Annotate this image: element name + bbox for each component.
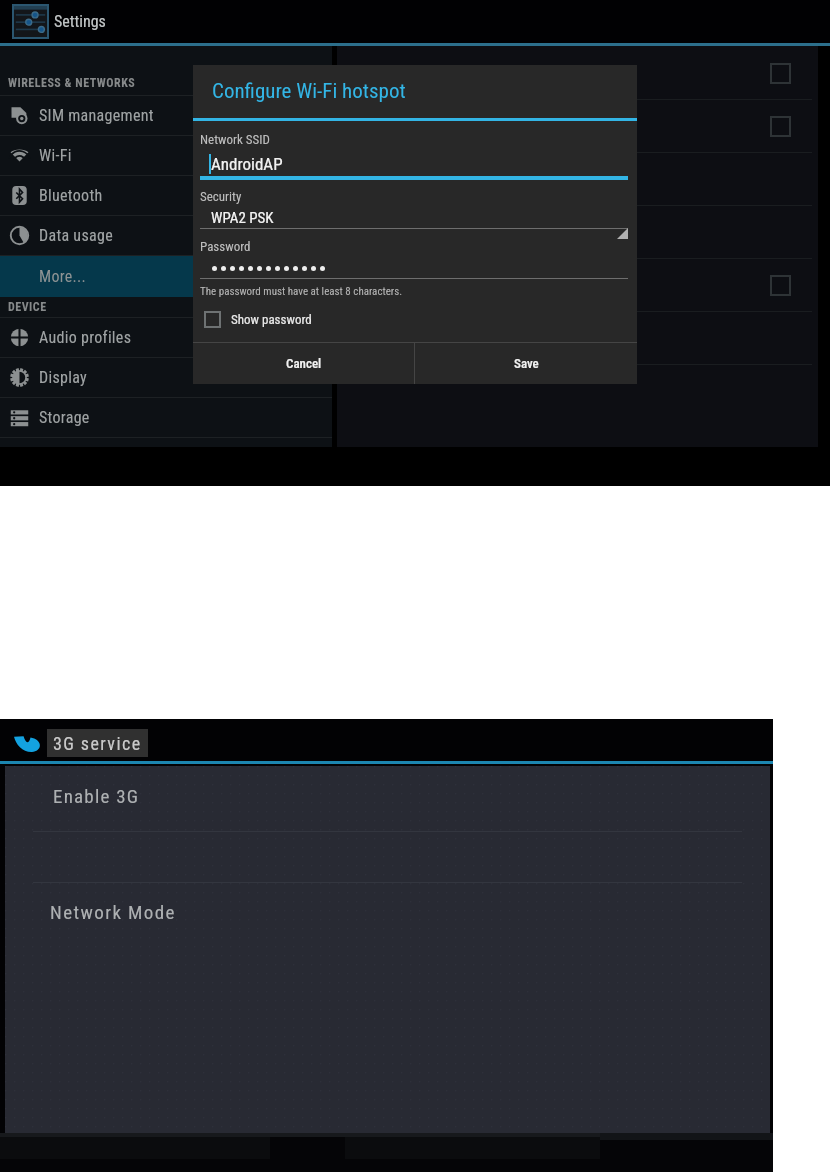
staticText: Data usage [39, 226, 113, 245]
button[interactable]: Mobile networks [337, 312, 818, 365]
staticText: Wi-Fi [39, 146, 72, 165]
button[interactable]: Cancel [193, 343, 414, 384]
staticText: 3G service [53, 733, 142, 754]
staticText: Network SSID [200, 132, 270, 147]
button[interactable]: Show password [200, 312, 628, 327]
staticText: Portable Wi-Fi hotspot [355, 117, 771, 136]
staticText: Configure Wi-Fi hotspot [355, 170, 790, 189]
button[interactable]: Save [415, 343, 637, 384]
button[interactable]: More... [39, 256, 332, 297]
staticText: WPA2 PSK [211, 209, 274, 227]
button[interactable]: Data usage [0, 216, 332, 256]
staticText: SIM management [39, 106, 154, 125]
staticText: Show password [231, 312, 312, 327]
staticText: Configure Wi-Fi hotspot [212, 79, 406, 104]
button[interactable]: Portable Wi-Fi hotspot [337, 100, 818, 153]
other: 3G service [14, 735, 43, 752]
button[interactable]: USB tethering [337, 47, 818, 100]
staticText: Bluetooth [39, 186, 103, 205]
button[interactable]: Storage [0, 398, 332, 438]
staticText: Storage [39, 408, 90, 427]
staticText: DEVICE [8, 300, 47, 314]
staticText: Settings [54, 12, 106, 31]
staticText: Save [514, 356, 539, 371]
staticText: Bluetooth tethering [355, 223, 790, 242]
button[interactable]: Display [0, 358, 332, 398]
staticText: Display [39, 368, 87, 387]
staticText: Cancel [286, 356, 322, 371]
button[interactable]: Enable 3G [5, 770, 770, 831]
button[interactable]: Configure Wi-Fi hotspot [337, 153, 818, 206]
staticText: Password [200, 239, 251, 254]
staticText: AndroidAP [211, 154, 283, 174]
button[interactable]: Bluetooth tethering [337, 206, 818, 259]
button[interactable]: SIM management [0, 96, 332, 136]
button[interactable]: VPN [337, 259, 818, 312]
staticText: Security [200, 189, 242, 204]
staticText: Audio profiles [39, 328, 132, 347]
staticText: Enable 3G [53, 785, 140, 807]
staticText: The password must have at least 8 charac… [200, 285, 403, 298]
staticText: Network Mode [50, 901, 176, 923]
staticText: WIRELESS & NETWORKS [8, 76, 136, 90]
button[interactable]: Audio profiles [0, 318, 332, 358]
button[interactable]: Wi-Fi [0, 136, 332, 176]
staticText: Mobile networks [355, 329, 790, 348]
staticText: More... [39, 267, 87, 286]
button[interactable]: Bluetooth [0, 176, 332, 216]
button[interactable]: Network Mode [5, 883, 770, 941]
staticText: USB tethering [355, 64, 771, 83]
staticText: VPN [355, 276, 771, 295]
